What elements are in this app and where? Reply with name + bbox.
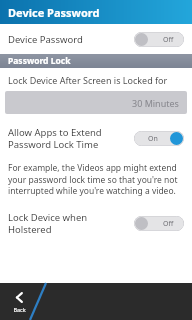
button[interactable]: Allow Apps to Extend Password Lock Time: [0, 123, 192, 154]
button[interactable]: Lock Device when Holstered: [0, 208, 192, 239]
button[interactable]: 30 Minutes: [5, 91, 187, 114]
button[interactable]: Toggle On: [134, 131, 184, 146]
button[interactable]: Toggle Off: [134, 216, 184, 231]
staticText: Back: [13, 306, 26, 313]
staticText: On: [148, 134, 158, 144]
button[interactable]: Back: [0, 283, 38, 320]
staticText: Lock Device when Holstered: [8, 211, 134, 236]
staticText: Device Password: [8, 33, 134, 46]
staticText: Device Password: [8, 5, 100, 20]
staticText: Off: [163, 219, 174, 229]
staticText: Allow Apps to Extend Password Lock Time: [8, 126, 134, 151]
staticText: For example, the Videos app might extend…: [8, 162, 184, 197]
staticText: Password Lock: [8, 55, 71, 67]
staticText: Off: [163, 35, 174, 45]
button[interactable]: Toggle Off: [134, 32, 184, 47]
staticText: Lock Device After Screen is Locked for: [8, 74, 168, 86]
button[interactable]: Device Password: [0, 24, 192, 54]
staticText: 30 Minutes: [132, 97, 179, 109]
